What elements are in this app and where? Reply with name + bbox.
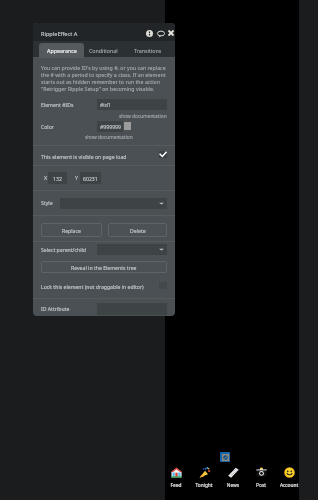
staticText: #id1 — [100, 101, 111, 108]
staticText: Lock this element (not draggable in edit… — [41, 283, 144, 290]
button[interactable]: Post — [247, 467, 275, 491]
staticText: Element #IDs — [41, 101, 74, 108]
button[interactable]: Info — [145, 29, 153, 37]
button[interactable]: Reveal in the Elements tree — [41, 261, 167, 273]
button[interactable]: Tonight — [190, 467, 218, 491]
staticText: Delete — [130, 227, 146, 234]
staticText: Transitions — [134, 47, 162, 54]
button[interactable]: Open dropdown — [60, 198, 167, 209]
button[interactable]: 132 — [48, 172, 67, 184]
staticText: Tonight — [190, 482, 218, 489]
button[interactable]: #id1 — [97, 99, 167, 110]
button[interactable]: show documentation — [119, 113, 167, 120]
staticText: 60231 — [83, 175, 98, 182]
button[interactable]: Delete — [108, 223, 167, 237]
button[interactable]: Conditional — [86, 43, 120, 58]
button[interactable]: This element is visible on page load — [33, 146, 175, 166]
button[interactable]: Comments — [156, 29, 165, 38]
button[interactable]: show documentation — [85, 134, 133, 141]
staticText: Color — [41, 123, 54, 130]
button[interactable]: Open dropdown — [97, 244, 167, 255]
staticText: This element is visible on page load — [41, 153, 127, 160]
staticText: ID Attribute — [41, 305, 70, 312]
staticText: Select parent/child — [41, 246, 86, 253]
staticText: You can provide ID's by using #, or you … — [41, 64, 168, 92]
staticText: Account — [275, 482, 303, 489]
staticText: Reveal in the Elements tree — [71, 264, 137, 271]
staticText: Appearance — [47, 47, 77, 54]
staticText: Post — [247, 482, 275, 489]
button[interactable]: Account — [275, 467, 303, 491]
button[interactable]: Lock this element (not draggable in edit… — [33, 276, 175, 296]
staticText: News — [219, 482, 247, 489]
button[interactable]: 60231 — [80, 172, 101, 184]
staticText: Replace — [62, 227, 81, 234]
button[interactable]: App icon — [220, 452, 230, 462]
staticText: Y — [75, 174, 78, 181]
button[interactable]: Close — [167, 29, 175, 37]
button[interactable]: Replace — [41, 223, 102, 237]
staticText: 132 — [53, 175, 62, 182]
staticText: X — [44, 174, 48, 181]
staticText: #999999 — [100, 123, 121, 130]
button[interactable]: News — [219, 467, 247, 491]
button[interactable]: #999999 — [97, 121, 123, 132]
button[interactable]: Feed — [162, 467, 190, 491]
button[interactable]: Transitions — [131, 43, 165, 58]
staticText: Style — [41, 199, 53, 206]
staticText: Conditional — [89, 47, 118, 54]
staticText: RippleEffect A — [41, 30, 78, 38]
staticText: Feed — [162, 482, 190, 489]
button[interactable]: Appearance — [39, 43, 84, 58]
